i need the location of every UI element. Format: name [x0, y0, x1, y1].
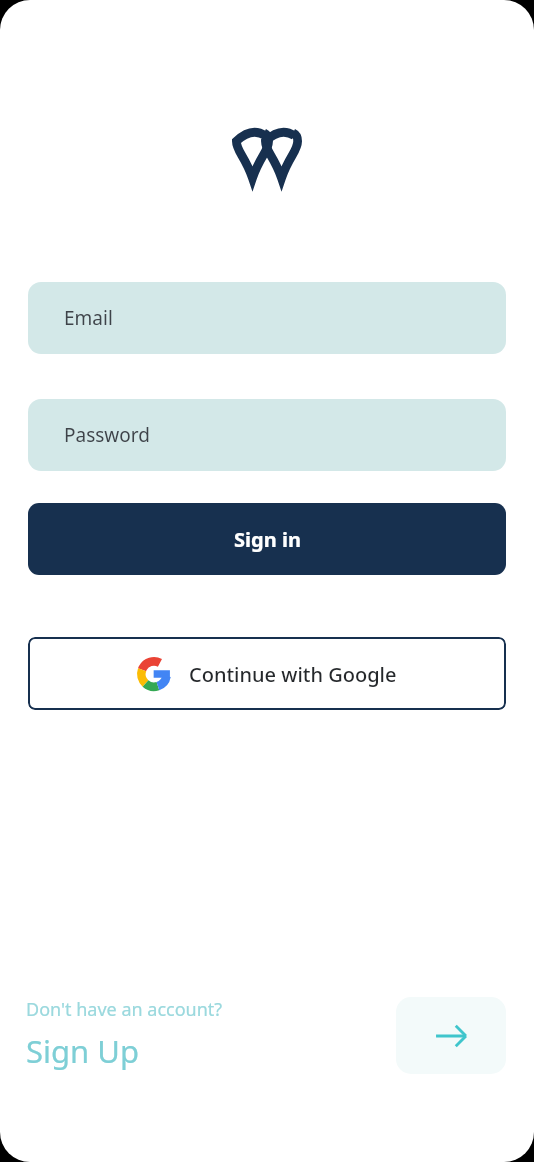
staticText: Password [64, 422, 150, 448]
staticText: Don't have an account? [26, 997, 223, 1022]
button[interactable]: Continue with Google [28, 637, 506, 710]
button[interactable]: Sign Up [396, 997, 506, 1074]
button[interactable]: Password [28, 399, 506, 471]
button[interactable]: Sign in [28, 503, 506, 575]
staticText: Sign in [234, 526, 301, 553]
staticText: Sign Up [26, 1030, 140, 1072]
staticText: Continue with Google [189, 661, 397, 688]
staticText: Email [64, 305, 113, 331]
button[interactable]: Email [28, 282, 506, 354]
button[interactable]: Don't have an account? [26, 997, 223, 1072]
